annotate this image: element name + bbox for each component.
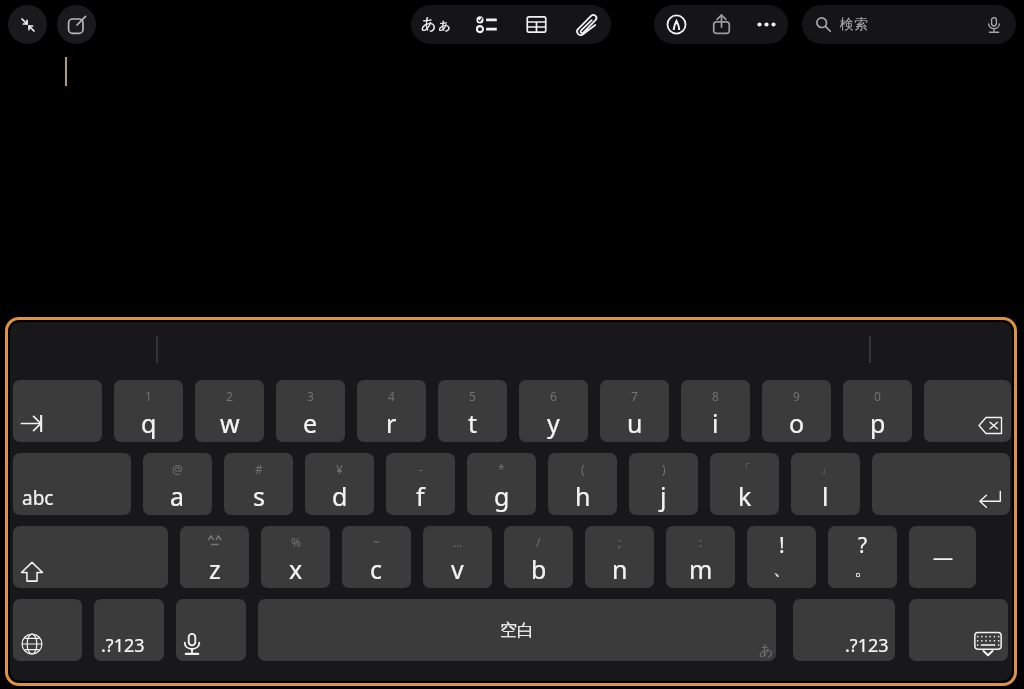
button[interactable]: #: [224, 453, 293, 515]
button[interactable]: ¥: [305, 453, 374, 515]
button[interactable]: *: [467, 453, 536, 515]
button[interactable]: Table: [511, 5, 561, 44]
staticText: x: [289, 552, 303, 586]
staticText: b: [531, 552, 547, 586]
button[interactable]: abc: [13, 453, 131, 515]
button[interactable]: 「: [710, 453, 779, 515]
button[interactable]: ): [629, 453, 698, 515]
button[interactable]: 4: [357, 380, 426, 442]
button[interactable]: —: [909, 526, 976, 588]
staticText: @: [172, 461, 183, 477]
button[interactable]: Backspace: [924, 380, 1011, 442]
button[interactable]: 0: [843, 380, 912, 442]
staticText: 8: [712, 388, 719, 404]
button[interactable]: Language: [13, 599, 82, 661]
staticText: v: [451, 552, 464, 586]
button[interactable]: /: [504, 526, 573, 588]
button[interactable]: (: [548, 453, 617, 515]
staticText: abc: [22, 485, 54, 511]
staticText: z: [209, 552, 221, 586]
staticText: q: [141, 406, 157, 440]
button[interactable]: 」: [791, 453, 860, 515]
staticText: 9: [793, 388, 800, 404]
staticText: ?: [858, 531, 868, 560]
staticText: l: [822, 479, 829, 513]
button[interactable]: Checklist: [461, 5, 511, 44]
staticText: !: [779, 531, 785, 560]
button[interactable]: 8: [681, 380, 750, 442]
staticText: *: [498, 461, 505, 477]
staticText: k: [738, 479, 752, 513]
button[interactable]: ?: [828, 526, 897, 588]
staticText: 0: [874, 388, 881, 404]
staticText: 空白: [500, 620, 534, 641]
button[interactable]: Share: [699, 5, 744, 44]
staticText: a: [170, 479, 185, 513]
staticText: w: [220, 406, 240, 440]
staticText: c: [370, 552, 383, 586]
button[interactable]: Shift: [13, 526, 168, 588]
button[interactable]: ~: [342, 526, 411, 588]
staticText: y: [547, 406, 560, 440]
staticText: :: [699, 534, 703, 550]
staticText: ): [662, 461, 666, 477]
button[interactable]: 6: [519, 380, 588, 442]
staticText: s: [253, 479, 265, 513]
button[interactable]: 5: [438, 380, 507, 442]
staticText: ~: [373, 534, 380, 550]
button[interactable]: :: [666, 526, 735, 588]
button[interactable]: 9: [762, 380, 831, 442]
button[interactable]: Hide keyboard: [909, 599, 1008, 661]
button[interactable]: Search: [802, 5, 1016, 44]
staticText: d: [332, 479, 348, 513]
button[interactable]: Attach: [561, 5, 611, 44]
staticText: h: [575, 479, 591, 513]
button[interactable]: 2: [195, 380, 264, 442]
staticText: u: [627, 406, 643, 440]
staticText: 7: [631, 388, 638, 404]
button[interactable]: 3: [276, 380, 345, 442]
button[interactable]: 空白: [258, 599, 776, 661]
button[interactable]: ;: [585, 526, 654, 588]
staticText: p: [870, 406, 886, 440]
staticText: i: [712, 406, 719, 440]
staticText: .?123: [101, 633, 145, 658]
staticText: 6: [550, 388, 557, 404]
button[interactable]: More: [744, 5, 788, 44]
staticText: g: [494, 479, 510, 513]
staticText: 、: [773, 558, 791, 581]
button[interactable]: Dictate: [176, 599, 246, 661]
staticText: 。: [854, 558, 872, 581]
button[interactable]: !: [747, 526, 816, 588]
button[interactable]: @: [143, 453, 212, 515]
button[interactable]: Return: [872, 453, 1010, 515]
staticText: 3: [307, 388, 314, 404]
staticText: あぁ: [421, 15, 452, 34]
staticText: %: [291, 534, 301, 550]
staticText: ¥: [336, 461, 343, 477]
staticText: r: [386, 406, 397, 440]
button[interactable]: Compose: [57, 5, 96, 44]
staticText: o: [789, 406, 805, 440]
staticText: 「: [739, 461, 751, 476]
button[interactable]: Tab: [13, 380, 102, 442]
staticText: —: [933, 544, 953, 571]
button[interactable]: Markup: [654, 5, 699, 44]
staticText: n: [612, 552, 628, 586]
button[interactable]: -: [386, 453, 455, 515]
staticText: e: [303, 406, 318, 440]
button[interactable]: …: [423, 526, 492, 588]
staticText: 2: [226, 388, 233, 404]
button[interactable]: 7: [600, 380, 669, 442]
button[interactable]: z: [180, 526, 249, 588]
button[interactable]: %: [261, 526, 330, 588]
staticText: /: [536, 534, 541, 550]
staticText: 検索: [840, 16, 868, 34]
button[interactable]: Text format: [411, 5, 461, 44]
button[interactable]: Minimize: [8, 5, 47, 44]
staticText: 4: [388, 388, 395, 404]
button[interactable]: .?123: [94, 599, 164, 661]
staticText: …: [453, 534, 463, 550]
button[interactable]: 1: [114, 380, 183, 442]
button[interactable]: .?123: [793, 599, 895, 661]
